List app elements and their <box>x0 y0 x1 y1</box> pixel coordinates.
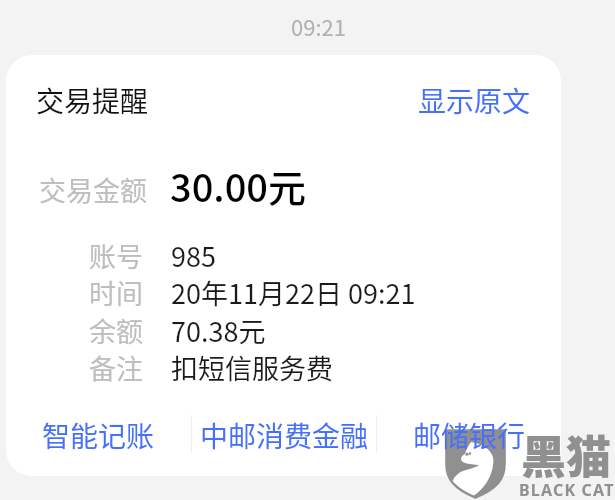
staticText: 交易提醒 <box>36 86 149 119</box>
button[interactable]: 中邮消费金融 <box>192 405 376 463</box>
staticText: 扣短信服务费 <box>171 355 333 385</box>
staticText: 时间 <box>89 280 143 310</box>
button[interactable]: 显示原文 <box>410 78 538 126</box>
staticText: 09:21 <box>291 15 346 41</box>
staticText: 30.00元 <box>170 167 306 211</box>
button[interactable]: 邮储银行 <box>377 405 561 463</box>
staticText: 70.38元 <box>171 318 266 348</box>
button[interactable]: 交易提醒 <box>6 55 561 476</box>
staticText: 985 <box>171 243 216 273</box>
button[interactable]: 智能记账 <box>6 405 191 463</box>
staticText: 智能记账 <box>42 422 155 453</box>
staticText: 中邮消费金融 <box>200 422 369 453</box>
staticText: 20年11月22日 09:21 <box>171 280 416 310</box>
staticText: 邮储银行 <box>413 422 526 453</box>
staticText: 备注 <box>89 355 143 385</box>
staticText: 交易金额 <box>39 177 147 207</box>
staticText: BLACK CAT <box>519 479 615 500</box>
staticText: 黑猫 <box>521 434 612 484</box>
staticText: 余额 <box>89 318 143 348</box>
staticText: 账号 <box>89 243 143 273</box>
staticText: 显示原文 <box>418 86 531 119</box>
